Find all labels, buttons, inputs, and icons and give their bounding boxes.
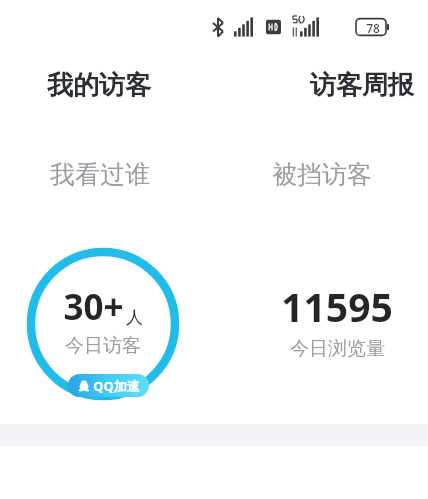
staticText: 我的访客 bbox=[47, 69, 151, 102]
staticText: 今日访客 bbox=[65, 334, 141, 358]
button[interactable]: 访客周报 bbox=[280, 62, 428, 108]
button[interactable]: 11595 bbox=[245, 244, 428, 404]
staticText: QQ加速 bbox=[93, 377, 140, 395]
staticText: 访客周报 bbox=[310, 69, 414, 102]
staticText: 今日浏览量 bbox=[290, 337, 385, 361]
button[interactable]: 我看过谁 bbox=[14, 152, 214, 196]
button[interactable]: 我的访客 bbox=[14, 62, 214, 108]
staticText: 78 bbox=[366, 20, 380, 36]
staticText: 人 bbox=[126, 307, 143, 328]
staticText: 11595 bbox=[281, 280, 393, 333]
staticText: 被挡访客 bbox=[272, 159, 372, 190]
staticText: 30+ bbox=[63, 283, 124, 331]
button[interactable]: 30+ bbox=[23, 244, 183, 404]
button[interactable]: QQ加速 bbox=[68, 374, 149, 397]
staticText: 我看过谁 bbox=[50, 159, 150, 190]
button[interactable]: 被挡访客 bbox=[250, 152, 428, 196]
